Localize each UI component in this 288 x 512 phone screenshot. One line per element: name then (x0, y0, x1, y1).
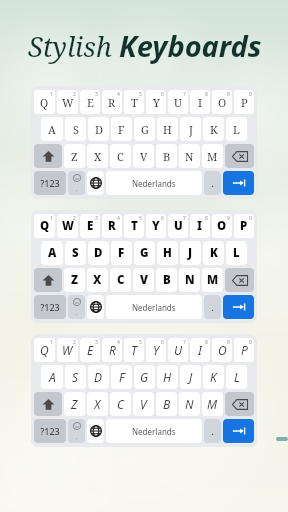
button[interactable]: O (212, 90, 232, 114)
button[interactable]: K (203, 241, 224, 265)
button[interactable]: W (57, 90, 78, 114)
button[interactable]: Z (64, 144, 85, 168)
button[interactable]: Shift (34, 268, 62, 292)
button[interactable]: M (202, 268, 223, 292)
button[interactable]: . (204, 171, 221, 195)
button[interactable]: F (111, 365, 132, 389)
button[interactable]: E (80, 338, 100, 362)
button[interactable]: Nederlands (106, 171, 202, 195)
button[interactable]: I (190, 214, 210, 238)
button[interactable]: U (168, 338, 188, 362)
button[interactable]: Enter (223, 419, 254, 443)
button[interactable]: V (133, 392, 154, 416)
button[interactable]: O (212, 214, 232, 238)
button[interactable]: Enter (223, 171, 254, 195)
button[interactable]: G (134, 241, 155, 265)
button[interactable]: Q (34, 214, 55, 238)
button[interactable]: L (226, 365, 247, 389)
button[interactable]: T (124, 338, 144, 362)
button[interactable]: U (168, 214, 188, 238)
button[interactable]: S (65, 117, 86, 141)
button[interactable]: Y (146, 90, 166, 114)
button[interactable]: Backspace (225, 392, 254, 416)
button[interactable]: J (180, 117, 201, 141)
button[interactable]: Language (87, 295, 104, 319)
button[interactable]: D (88, 365, 109, 389)
button[interactable]: N (179, 268, 200, 292)
button[interactable]: E (80, 214, 100, 238)
button[interactable]: Nederlands (106, 419, 202, 443)
button[interactable]: Emoji (68, 419, 85, 443)
button[interactable]: A (41, 365, 63, 389)
button[interactable]: R (102, 90, 122, 114)
button[interactable]: Shift (34, 392, 62, 416)
button[interactable]: P (234, 338, 254, 362)
button[interactable]: C (110, 392, 131, 416)
button[interactable]: W (57, 338, 78, 362)
button[interactable]: A (41, 241, 63, 265)
button[interactable]: T (124, 90, 144, 114)
button[interactable]: X (87, 268, 108, 292)
button[interactable]: Y (146, 338, 166, 362)
button[interactable]: K (203, 365, 224, 389)
button[interactable]: Language (87, 419, 104, 443)
button[interactable]: G (134, 365, 155, 389)
button[interactable]: X (87, 392, 108, 416)
button[interactable]: O (212, 338, 232, 362)
button[interactable]: S (65, 241, 86, 265)
button[interactable]: X (87, 144, 108, 168)
button[interactable]: N (179, 144, 200, 168)
button[interactable]: Q (34, 338, 55, 362)
button[interactable]: M (202, 144, 223, 168)
button[interactable]: P (234, 214, 254, 238)
button[interactable]: B (156, 144, 177, 168)
button[interactable]: C (110, 268, 131, 292)
button[interactable]: I (190, 90, 210, 114)
button[interactable]: B (156, 268, 177, 292)
button[interactable]: . (204, 419, 221, 443)
button[interactable]: C (110, 144, 131, 168)
button[interactable]: Emoji (68, 171, 85, 195)
button[interactable]: . (204, 295, 221, 319)
button[interactable]: R (102, 214, 122, 238)
button[interactable]: Y (146, 214, 166, 238)
button[interactable]: ?123 (34, 419, 66, 443)
button[interactable]: T (124, 214, 144, 238)
button[interactable]: R (102, 338, 122, 362)
button[interactable]: Backspace (225, 144, 254, 168)
button[interactable]: L (226, 117, 247, 141)
button[interactable]: H (157, 365, 178, 389)
button[interactable]: Q (34, 90, 55, 114)
button[interactable]: V (133, 268, 154, 292)
button[interactable]: Nederlands (106, 295, 202, 319)
button[interactable]: L (226, 241, 247, 265)
button[interactable]: ?123 (34, 295, 66, 319)
button[interactable]: G (134, 117, 155, 141)
button[interactable]: Language (87, 171, 104, 195)
button[interactable]: M (202, 392, 223, 416)
button[interactable]: F (111, 117, 132, 141)
button[interactable]: H (157, 241, 178, 265)
button[interactable]: J (180, 241, 201, 265)
button[interactable]: W (57, 214, 78, 238)
button[interactable]: Emoji (68, 295, 85, 319)
button[interactable]: D (88, 117, 109, 141)
button[interactable]: D (88, 241, 109, 265)
button[interactable]: ?123 (34, 171, 66, 195)
button[interactable]: V (133, 144, 154, 168)
button[interactable]: B (156, 392, 177, 416)
button[interactable]: I (190, 338, 210, 362)
button[interactable]: P (234, 90, 254, 114)
button[interactable]: J (180, 365, 201, 389)
button[interactable]: Z (64, 392, 85, 416)
button[interactable]: N (179, 392, 200, 416)
button[interactable]: H (157, 117, 178, 141)
button[interactable]: S (65, 365, 86, 389)
button[interactable]: Enter (223, 295, 254, 319)
button[interactable]: E (80, 90, 100, 114)
button[interactable]: A (41, 117, 63, 141)
button[interactable]: U (168, 90, 188, 114)
button[interactable]: Backspace (225, 268, 254, 292)
button[interactable]: K (203, 117, 224, 141)
button[interactable]: F (111, 241, 132, 265)
